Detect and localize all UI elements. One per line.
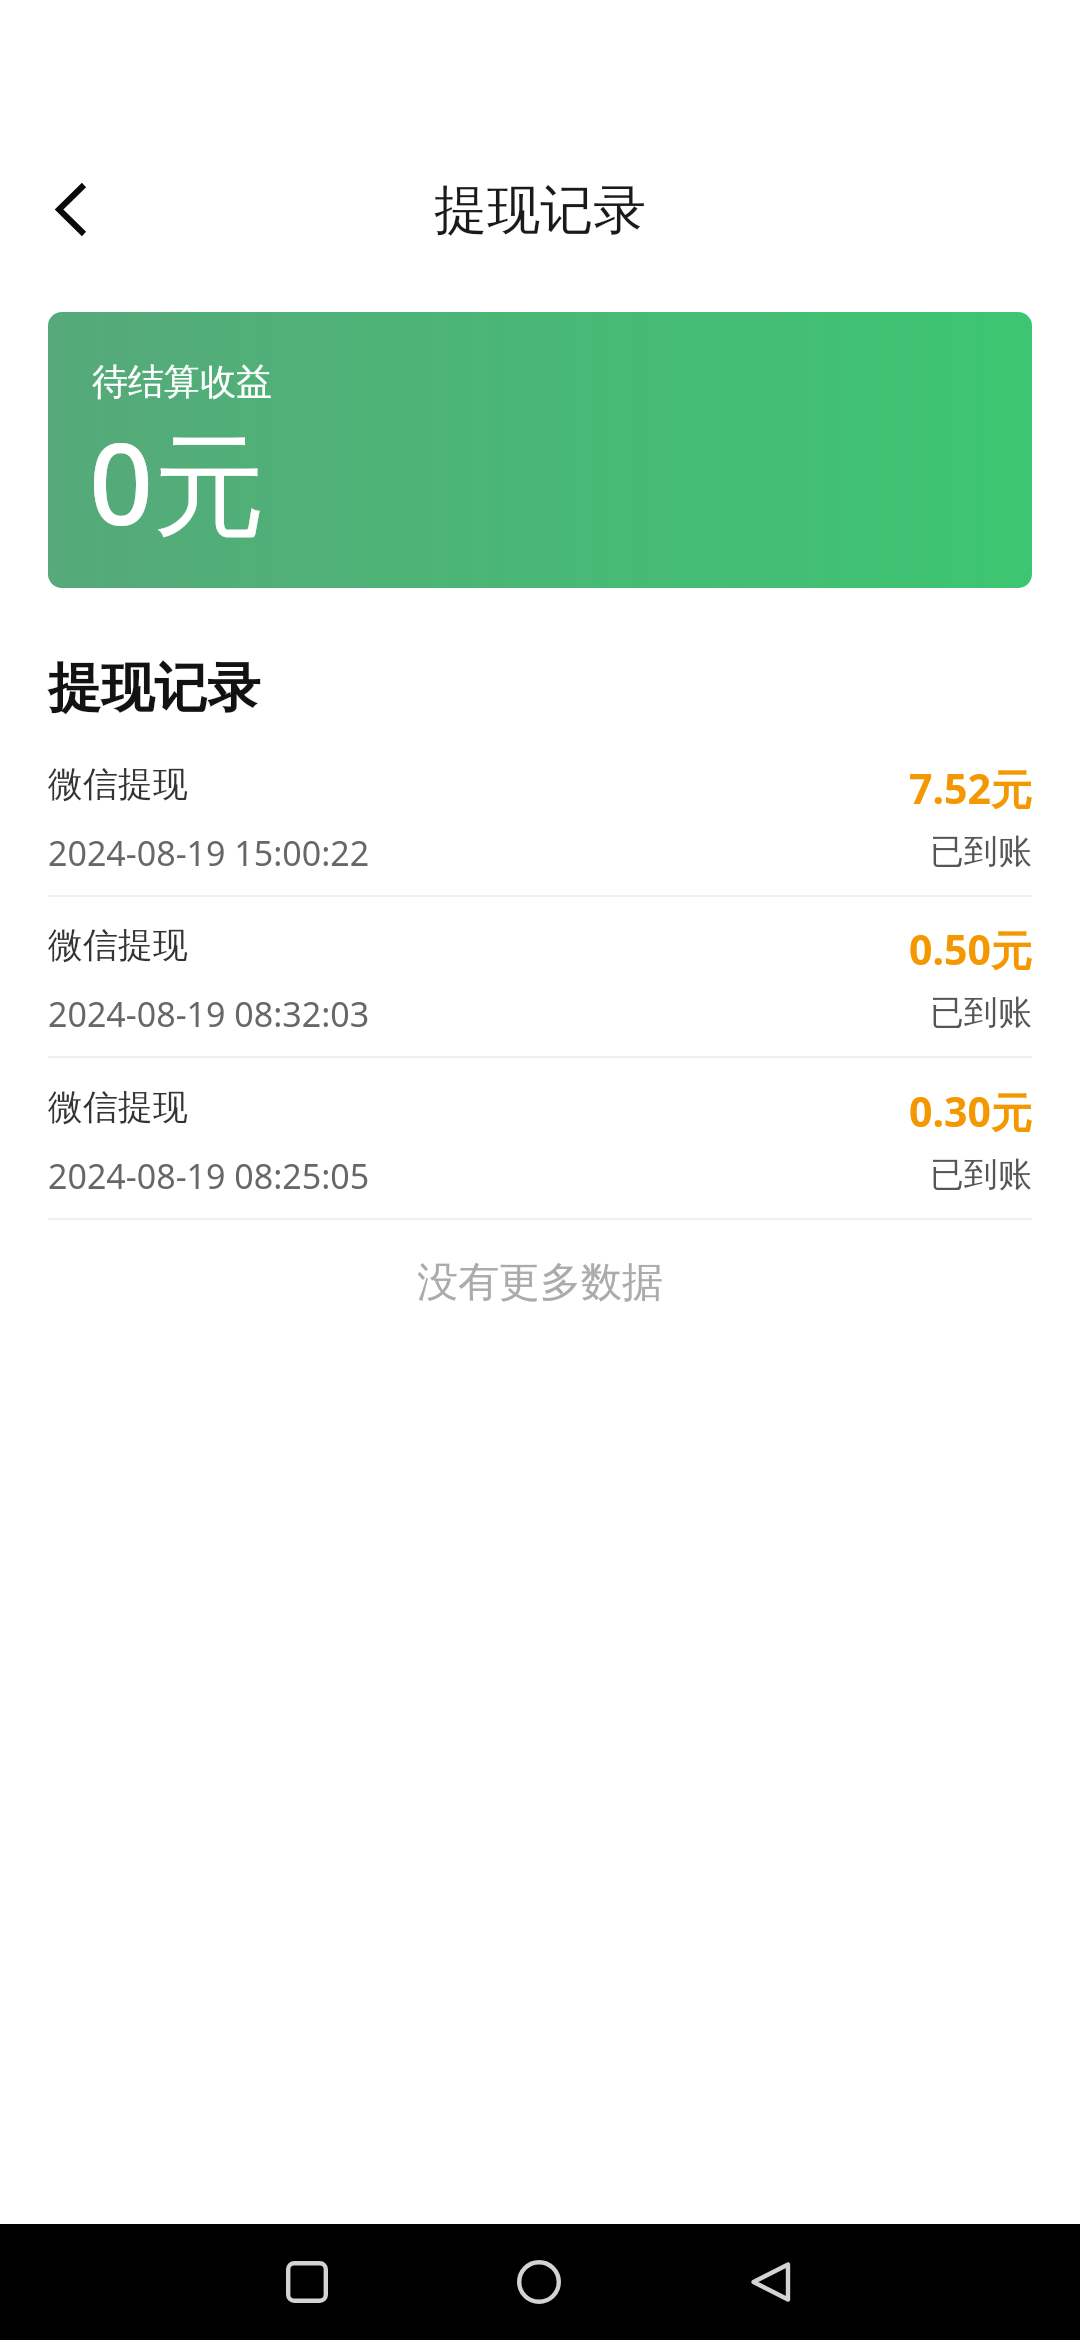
staticText: 提现记录 bbox=[0, 177, 1080, 244]
staticText: 微信提现 bbox=[48, 1085, 188, 1129]
staticText: 2024-08-19 08:25:05 bbox=[48, 1153, 370, 1199]
button[interactable]: 待结算收益 bbox=[48, 312, 1032, 588]
staticText: 0元 bbox=[89, 405, 266, 558]
button[interactable]: 微信提现 bbox=[0, 1059, 1080, 1220]
staticText: 待结算收益 bbox=[92, 359, 272, 404]
staticText: 微信提现 bbox=[48, 923, 188, 967]
staticText: 已到账 bbox=[0, 830, 1032, 873]
staticText: 2024-08-19 08:32:03 bbox=[48, 991, 370, 1037]
button[interactable]: Back bbox=[713, 2224, 829, 2340]
staticText: 没有更多数据 bbox=[0, 1257, 1080, 1309]
button[interactable]: Recent apps bbox=[249, 2224, 365, 2340]
staticText: 提现记录 bbox=[48, 655, 260, 722]
staticText: 已到账 bbox=[0, 1153, 1032, 1196]
staticText: 7.52元 bbox=[0, 760, 1032, 816]
button[interactable]: Back bbox=[30, 166, 118, 254]
button[interactable]: 微信提现 bbox=[0, 736, 1080, 897]
staticText: 已到账 bbox=[0, 991, 1032, 1034]
staticText: 微信提现 bbox=[48, 762, 188, 806]
button[interactable]: 微信提现 bbox=[0, 897, 1080, 1058]
staticText: 2024-08-19 15:00:22 bbox=[48, 830, 370, 876]
staticText: 0.30元 bbox=[0, 1083, 1032, 1139]
staticText: 0.50元 bbox=[0, 921, 1032, 977]
button[interactable]: Home bbox=[481, 2224, 597, 2340]
